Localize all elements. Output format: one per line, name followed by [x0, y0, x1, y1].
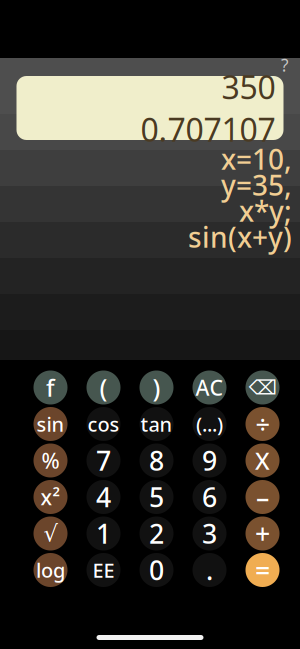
staticText: x²: [40, 483, 60, 511]
staticText: .: [206, 552, 213, 588]
staticText: f: [46, 372, 55, 403]
button[interactable]: Help: [276, 58, 294, 72]
button[interactable]: 4: [86, 480, 120, 514]
staticText: 0: [149, 552, 164, 588]
button[interactable]: EE: [86, 553, 120, 587]
button[interactable]: +: [245, 516, 279, 550]
staticText: y=35,: [221, 166, 292, 204]
staticText: +: [255, 516, 270, 551]
staticText: EE: [92, 557, 114, 583]
staticText: 0.707107: [140, 108, 275, 150]
staticText: x*y;: [239, 192, 292, 230]
staticText: –: [256, 479, 269, 515]
button[interactable]: ⌫: [245, 370, 279, 404]
button[interactable]: X: [245, 443, 279, 477]
staticText: log: [36, 557, 65, 583]
staticText: AC: [195, 373, 223, 402]
button[interactable]: cos: [86, 407, 120, 441]
staticText: (: [99, 371, 107, 404]
button[interactable]: 8: [139, 443, 173, 477]
button[interactable]: 6: [192, 480, 226, 514]
staticText: ⌫: [248, 376, 276, 399]
button[interactable]: 2: [139, 516, 173, 550]
staticText: 9: [202, 443, 217, 478]
staticText: 4: [96, 479, 111, 515]
staticText: √: [43, 521, 57, 546]
button[interactable]: 7: [86, 443, 120, 477]
staticText: 6: [202, 479, 217, 515]
staticText: =: [255, 552, 270, 588]
button[interactable]: ÷: [245, 407, 279, 441]
button[interactable]: f: [33, 370, 67, 404]
button[interactable]: AC: [192, 370, 226, 404]
button[interactable]: √: [33, 516, 67, 550]
staticText: x=10,: [221, 140, 292, 178]
staticText: 1: [96, 516, 111, 551]
staticText: ): [152, 371, 160, 404]
staticText: 8: [149, 443, 164, 478]
button[interactable]: –: [245, 480, 279, 514]
button[interactable]: 0: [139, 553, 173, 587]
staticText: cos: [87, 411, 119, 437]
button[interactable]: .: [192, 553, 226, 587]
staticText: 7: [96, 443, 111, 478]
staticText: 3: [202, 516, 217, 551]
staticText: 5: [149, 479, 164, 515]
staticText: sin: [36, 411, 64, 437]
button[interactable]: sin: [33, 407, 67, 441]
button[interactable]: 1: [86, 516, 120, 550]
button[interactable]: 5: [139, 480, 173, 514]
staticText: (...): [196, 411, 223, 437]
button[interactable]: =: [245, 553, 279, 587]
button[interactable]: ): [139, 370, 173, 404]
button[interactable]: tan: [139, 407, 173, 441]
staticText: ÷: [255, 407, 269, 441]
button[interactable]: x²: [33, 480, 67, 514]
button[interactable]: 3: [192, 516, 226, 550]
staticText: 2: [149, 516, 164, 551]
staticText: sin(x+y): [188, 218, 292, 256]
staticText: 350: [221, 65, 275, 108]
button[interactable]: (...): [192, 407, 226, 441]
staticText: ?: [281, 53, 289, 76]
button[interactable]: 9: [192, 443, 226, 477]
button[interactable]: log: [33, 553, 67, 587]
button[interactable]: (: [86, 370, 120, 404]
staticText: %: [41, 446, 59, 475]
button[interactable]: %: [33, 443, 67, 477]
staticText: tan: [140, 411, 172, 437]
staticText: X: [255, 445, 270, 476]
